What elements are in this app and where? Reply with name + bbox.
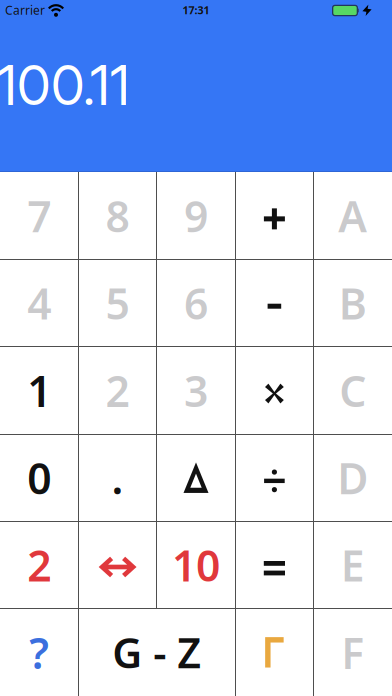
button[interactable]: = — [235, 524, 314, 612]
staticText: D — [337, 449, 368, 506]
button[interactable]: - — [235, 262, 314, 350]
staticText: 2 — [27, 537, 51, 593]
button[interactable]: F — [314, 609, 392, 696]
staticText: 10 — [172, 537, 220, 593]
button[interactable]: G - Z — [78, 609, 235, 696]
button[interactable]: 5 — [78, 259, 157, 347]
button[interactable]: ÷ — [235, 437, 314, 524]
staticText: 8 — [106, 187, 130, 244]
button[interactable]: Gamma — [235, 609, 314, 696]
staticText: 5 — [106, 275, 130, 331]
button[interactable]: 2 — [0, 521, 78, 609]
button[interactable]: A — [314, 172, 392, 259]
staticText: Carrier — [5, 2, 45, 18]
button[interactable]: 10 — [157, 521, 235, 609]
staticText: A — [338, 187, 367, 244]
staticText: . — [112, 449, 124, 506]
staticText: 1 — [27, 362, 51, 419]
button[interactable]: 9 — [157, 172, 235, 259]
staticText: B — [339, 275, 367, 331]
button[interactable]: 1 — [0, 347, 78, 434]
button[interactable]: Delta — [157, 434, 235, 521]
button[interactable]: + — [235, 175, 314, 262]
button[interactable]: 3 — [157, 347, 235, 434]
staticText: 17:31 — [182, 3, 209, 17]
button[interactable]: 6 — [157, 259, 235, 347]
button[interactable]: × — [235, 350, 314, 437]
button[interactable]: Help — [0, 609, 78, 696]
button[interactable]: 0 — [0, 434, 78, 521]
staticText: F — [341, 624, 364, 681]
button[interactable]: D — [314, 434, 392, 521]
button[interactable]: E — [314, 521, 392, 609]
button[interactable]: 4 — [0, 259, 78, 347]
staticText: 0 — [27, 449, 51, 506]
staticText: 6 — [184, 275, 208, 331]
staticText: 2 — [106, 362, 130, 419]
button[interactable]: 8 — [78, 172, 157, 259]
staticText: 7 — [27, 187, 51, 244]
staticText: 4 — [27, 275, 51, 331]
staticText: G - Z — [112, 625, 201, 680]
button[interactable]: 2 — [78, 347, 157, 434]
button[interactable]: C — [314, 347, 392, 434]
staticText: 9 — [184, 187, 208, 244]
button[interactable]: Convert base — [78, 523, 157, 611]
staticText: 100.11 — [0, 52, 130, 118]
staticText: E — [341, 537, 365, 593]
button[interactable]: . — [78, 434, 157, 521]
button[interactable]: 7 — [0, 172, 78, 259]
staticText: 3 — [184, 362, 208, 419]
button[interactable]: B — [314, 259, 392, 347]
staticText: C — [339, 362, 366, 419]
staticText: ? — [29, 624, 49, 681]
